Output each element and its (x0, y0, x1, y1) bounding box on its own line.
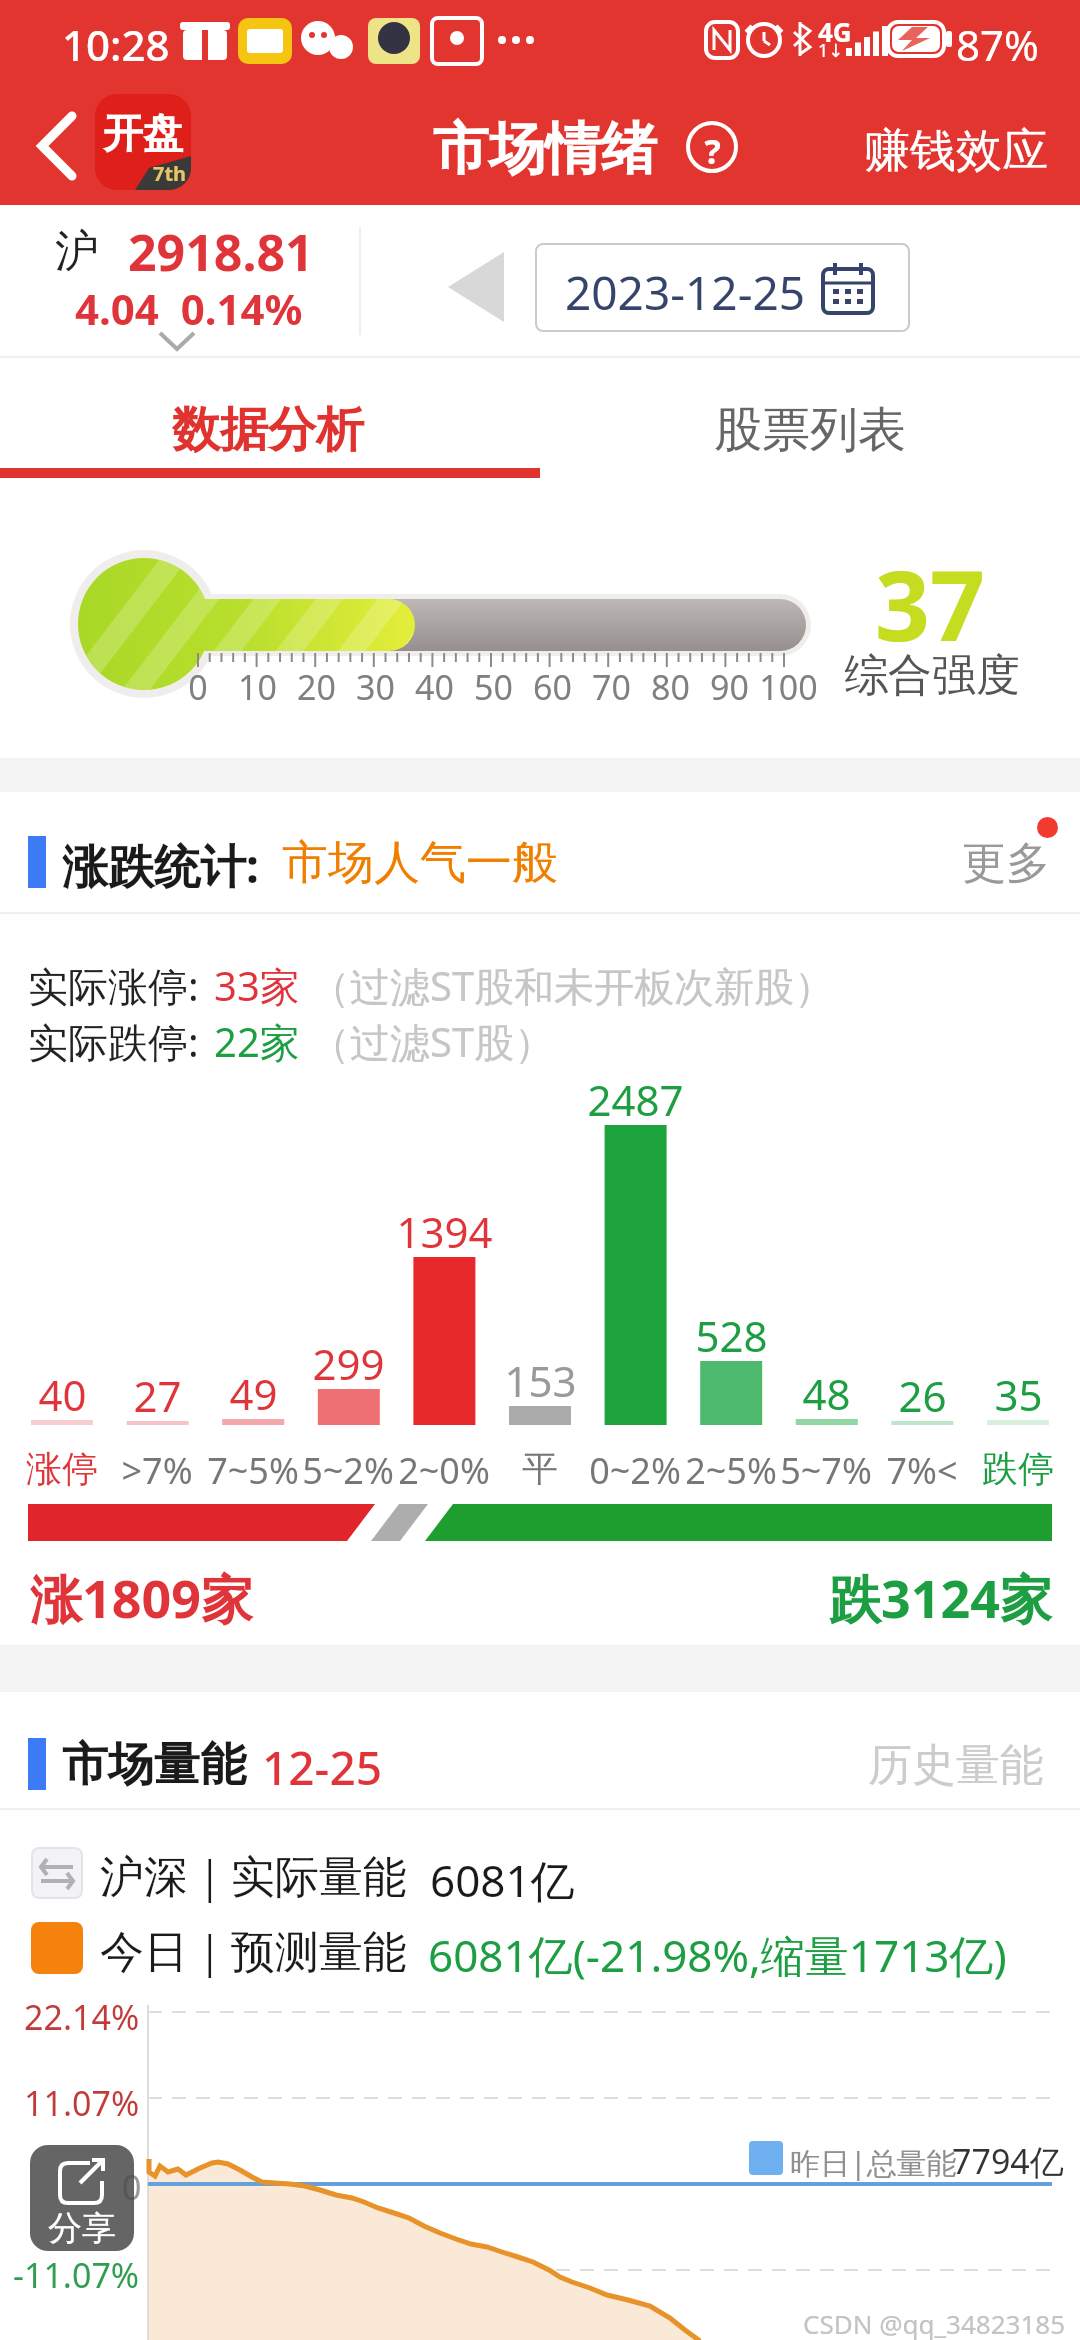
staticText: 今日｜预测量能 (100, 1925, 408, 1980)
staticText: 10:28 (62, 16, 170, 73)
button[interactable] (940, 810, 1070, 890)
staticText: 数据分析 (172, 400, 364, 460)
staticText: 22家 (214, 1014, 300, 1069)
staticText: 4G (818, 14, 852, 49)
staticText: 70 (592, 664, 631, 710)
button[interactable]: 分享 (30, 2145, 134, 2251)
staticText: 11.07% (24, 2080, 140, 2126)
staticText: 10 (238, 664, 277, 710)
staticText: 涨跌统计: (62, 834, 259, 897)
staticText: 跌3124家 (829, 1562, 1052, 1633)
staticText: 1↓ (818, 38, 844, 63)
staticText: 153 (504, 1352, 577, 1409)
staticText: 528 (695, 1307, 768, 1364)
staticText: 5~7% (780, 1446, 872, 1495)
staticText: 30 (356, 664, 395, 710)
staticText: 涨停 (26, 1446, 98, 1491)
staticText: 沪 (55, 224, 99, 279)
staticText: 7%< (886, 1446, 958, 1495)
staticText: 2~0% (398, 1446, 490, 1495)
staticText: 综合强度 (844, 648, 1020, 703)
staticText: 市场情绪 (433, 114, 657, 185)
button[interactable] (10, 95, 90, 195)
staticText: 4.04 0.14% (75, 280, 303, 337)
staticText: 7th (153, 160, 187, 187)
staticText: 20 (297, 664, 336, 710)
staticText: （过滤ST股） (310, 1014, 555, 1069)
staticText: 7~5% (207, 1446, 299, 1495)
button[interactable] (682, 117, 742, 177)
staticText: 12-25 (262, 1736, 383, 1799)
staticText: 7794亿 (952, 2138, 1064, 2184)
staticText: 90 (710, 664, 749, 710)
staticText: 0 (122, 2164, 142, 2210)
staticText: 历史量能 (868, 1738, 1044, 1793)
staticText: 33家 (214, 958, 300, 1013)
staticText: 49 (229, 1365, 278, 1422)
staticText: 2~5% (685, 1446, 777, 1495)
staticText: 市场量能 (62, 1736, 246, 1794)
staticText: 27 (133, 1367, 182, 1424)
staticText: 跌停 (982, 1446, 1054, 1491)
button[interactable] (850, 100, 1070, 190)
staticText: 昨日|总量能 (790, 2142, 957, 2183)
staticText: 0~2% (589, 1446, 681, 1495)
button[interactable] (540, 358, 1080, 468)
staticText: 1394 (396, 1203, 493, 1260)
button[interactable] (0, 358, 540, 468)
staticText: 沪深｜实际量能 (100, 1850, 408, 1905)
staticText: 股票列表 (714, 400, 906, 460)
staticText: 35 (994, 1366, 1043, 1423)
staticText: 40 (38, 1366, 87, 1423)
staticText: 26 (898, 1367, 947, 1424)
staticText: 6081亿(-21.98%,缩量1713亿) (428, 1925, 1007, 1985)
staticText: （过滤ST股和未开板次新股） (310, 958, 835, 1013)
staticText: 实际跌停: (28, 1014, 199, 1069)
button[interactable]: 2023-12-25 (535, 243, 910, 332)
staticText: -11.07% (13, 2252, 140, 2298)
staticText: 37 (875, 538, 985, 669)
button[interactable] (850, 1716, 1080, 1806)
staticText: 平 (522, 1446, 558, 1491)
staticText: 48 (802, 1365, 851, 1422)
staticText: 赚钱效应 (864, 122, 1048, 180)
staticText: 实际涨停: (28, 958, 199, 1013)
staticText: 2918.81 (128, 218, 314, 286)
staticText: 2487 (587, 1071, 684, 1128)
staticText: 2023-12-25 (565, 261, 806, 324)
staticText: 分享 (48, 2207, 116, 2250)
staticText: 5~2% (302, 1446, 394, 1495)
staticText: 299 (312, 1335, 385, 1392)
staticText: 更多 (962, 836, 1050, 891)
staticText: ? (704, 128, 721, 174)
staticText: CSDN @qq_34823185 (803, 2306, 1066, 2340)
staticText: 60 (533, 664, 572, 710)
staticText: 50 (474, 664, 513, 710)
staticText: 40 (415, 664, 454, 710)
staticText: 100 (759, 664, 818, 710)
staticText: 6081亿 (430, 1850, 575, 1910)
staticText: 87% (956, 16, 1039, 73)
staticText: 80 (651, 664, 690, 710)
staticText: 0 (188, 664, 208, 710)
staticText: >7% (121, 1446, 193, 1495)
staticText: 市场人气一般 (282, 834, 558, 892)
staticText: 22.14% (24, 1994, 140, 2040)
staticText: 涨1809家 (30, 1562, 253, 1633)
staticText: 开盘 (103, 108, 183, 158)
